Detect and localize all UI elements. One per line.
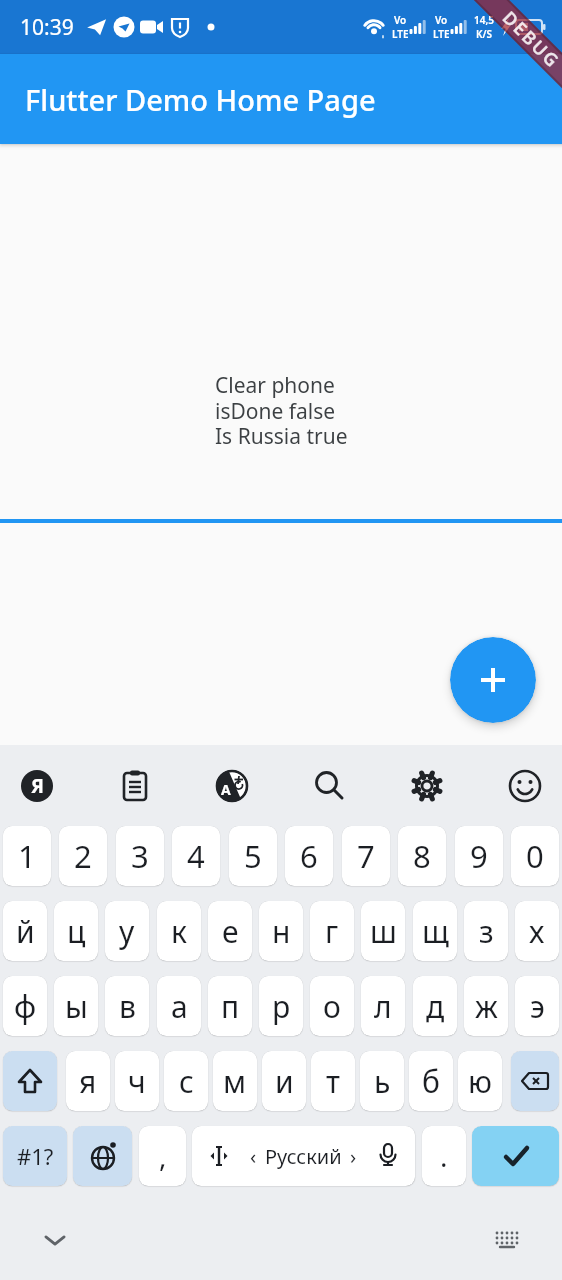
staticText: я <box>79 1061 97 1102</box>
button[interactable]: 0 <box>511 826 559 886</box>
button[interactable]: 1 <box>3 826 51 886</box>
staticText: 7 <box>357 835 375 877</box>
button[interactable]: а <box>157 976 201 1036</box>
button[interactable]: 9 <box>455 826 503 886</box>
staticText: K/S <box>476 27 492 41</box>
button[interactable]: ф <box>3 976 47 1036</box>
staticText: ц <box>67 911 86 952</box>
staticText: LTE <box>392 27 409 41</box>
button[interactable]: ‹ <box>192 1126 415 1186</box>
button[interactable]: 8 <box>398 826 446 886</box>
button[interactable]: ь <box>360 1051 404 1111</box>
button[interactable]: э <box>515 976 559 1036</box>
button[interactable] <box>115 766 155 806</box>
button[interactable]: у <box>105 901 149 961</box>
staticText: . <box>440 1137 448 1175</box>
staticText: 2 <box>74 835 92 877</box>
button[interactable]: и <box>262 1051 306 1111</box>
staticText: DEBUG <box>497 5 562 74</box>
button[interactable]: й <box>3 901 47 961</box>
staticText: р <box>272 986 291 1027</box>
button[interactable]: о <box>310 976 354 1036</box>
staticText: у <box>119 911 135 952</box>
button[interactable]: A <box>212 766 252 806</box>
button[interactable]: я <box>66 1051 110 1111</box>
staticText: и <box>275 1061 294 1102</box>
staticText: ф <box>14 986 37 1027</box>
button[interactable]: 6 <box>285 826 333 886</box>
button[interactable]: ц <box>54 901 98 961</box>
button[interactable] <box>3 1051 57 1111</box>
staticText: #1? <box>17 1141 54 1171</box>
button[interactable]: 4 <box>172 826 220 886</box>
button[interactable]: #1? <box>3 1126 67 1186</box>
staticText: Clear phone isDone false Is Russia true <box>215 371 348 450</box>
button[interactable]: в <box>105 976 149 1036</box>
button[interactable]: 2 <box>59 826 107 886</box>
button[interactable] <box>450 637 536 723</box>
button[interactable]: ж <box>464 976 508 1036</box>
button[interactable]: к <box>157 901 201 961</box>
button[interactable]: . <box>422 1126 466 1186</box>
button[interactable]: щ <box>413 901 457 961</box>
button[interactable] <box>310 766 350 806</box>
button[interactable]: , <box>139 1126 186 1186</box>
button[interactable]: л <box>361 976 405 1036</box>
button[interactable]: б <box>409 1051 453 1111</box>
staticText: ь <box>374 1061 391 1102</box>
button[interactable]: ы <box>54 976 98 1036</box>
staticText: 10:39 <box>20 13 74 42</box>
button[interactable] <box>73 1126 132 1186</box>
staticText: ю <box>468 1061 492 1102</box>
staticText: л <box>374 986 392 1027</box>
staticText: й <box>16 911 35 952</box>
staticText: › <box>350 1143 357 1170</box>
button[interactable]: Я <box>17 766 57 806</box>
staticText: щ <box>422 911 449 952</box>
button[interactable] <box>511 1051 559 1111</box>
button[interactable]: ю <box>458 1051 502 1111</box>
button[interactable]: м <box>213 1051 257 1111</box>
staticText: Vo <box>394 13 407 27</box>
button[interactable]: п <box>208 976 252 1036</box>
staticText: к <box>171 911 187 952</box>
staticText: д <box>426 986 445 1027</box>
staticText: з <box>479 911 494 952</box>
button[interactable]: ч <box>115 1051 159 1111</box>
button[interactable]: х <box>515 901 559 961</box>
staticText: 6 <box>300 835 318 877</box>
staticText: ч <box>128 1061 146 1102</box>
staticText: ж <box>475 986 498 1027</box>
button[interactable]: 3 <box>116 826 164 886</box>
button[interactable]: д <box>413 976 457 1036</box>
staticText: 3 <box>131 835 149 877</box>
staticText: э <box>530 986 545 1027</box>
staticText: ы <box>65 986 88 1027</box>
button[interactable] <box>472 1126 559 1186</box>
button[interactable] <box>407 766 447 806</box>
button[interactable]: г <box>310 901 354 961</box>
button[interactable]: ш <box>361 901 405 961</box>
button[interactable] <box>494 1230 520 1250</box>
staticText: м <box>223 1061 247 1102</box>
button[interactable]: з <box>464 901 508 961</box>
button[interactable]: р <box>259 976 303 1036</box>
button[interactable]: 7 <box>342 826 390 886</box>
button[interactable]: т <box>311 1051 355 1111</box>
button[interactable] <box>42 1227 68 1253</box>
button[interactable]: е <box>208 901 252 961</box>
staticText: 8 <box>413 835 431 877</box>
staticText: 9 <box>470 835 488 877</box>
button[interactable]: н <box>259 901 303 961</box>
button[interactable]: 5 <box>229 826 277 886</box>
staticText: е <box>222 911 239 952</box>
staticText: б <box>422 1061 440 1102</box>
staticText: Я <box>31 773 44 799</box>
staticText: , <box>159 1137 167 1175</box>
button[interactable]: с <box>164 1051 208 1111</box>
button[interactable] <box>505 766 545 806</box>
staticText: 1 <box>18 835 36 877</box>
staticText: с <box>179 1061 194 1102</box>
staticText: LTE <box>433 27 450 41</box>
staticText: Vo <box>435 13 448 27</box>
